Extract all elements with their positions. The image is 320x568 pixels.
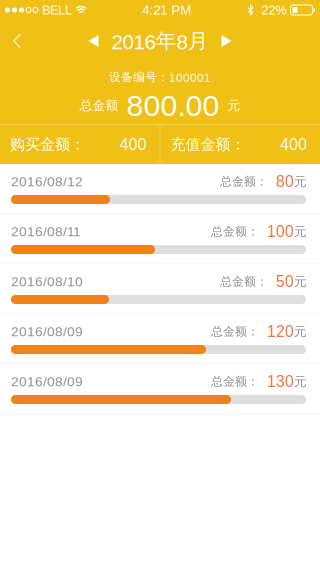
button[interactable]: 2016/08/09 bbox=[0, 314, 320, 364]
button[interactable]: 2016/08/09 bbox=[0, 364, 320, 414]
staticText: 2016/08/11 bbox=[11, 224, 81, 239]
button[interactable]: 2016/08/11 bbox=[0, 214, 320, 264]
staticText: 50 bbox=[276, 273, 294, 290]
staticText: 2016/08/09 bbox=[11, 374, 83, 389]
staticText: 总金额： bbox=[211, 374, 267, 389]
button[interactable]: Previous month bbox=[88, 20, 111, 62]
staticText: 元 bbox=[294, 174, 307, 189]
staticText: 元 bbox=[294, 224, 307, 239]
staticText: 总金额： bbox=[211, 224, 267, 239]
staticText: 130 bbox=[267, 373, 294, 390]
staticText: 购买金额： bbox=[10, 135, 85, 154]
staticText: 元 bbox=[294, 324, 307, 339]
staticText: 100 bbox=[267, 223, 294, 240]
staticText: 总金额 bbox=[79, 97, 118, 113]
staticText: 总金额： bbox=[220, 174, 276, 189]
staticText: 设备编号：100001 bbox=[109, 70, 211, 84]
staticText: 800.00 bbox=[118, 89, 227, 122]
button[interactable]: Back bbox=[0, 20, 44, 62]
button[interactable]: Next month bbox=[208, 20, 231, 62]
staticText: 总金额： bbox=[211, 324, 267, 339]
staticText: 22% bbox=[253, 3, 290, 17]
staticText: 元 bbox=[227, 97, 240, 113]
staticText: 充值金额： bbox=[170, 135, 245, 154]
button[interactable]: 2016/08/12 bbox=[0, 164, 320, 214]
staticText: 4:21 PM bbox=[142, 3, 191, 17]
staticText: BELL bbox=[38, 3, 76, 17]
button[interactable]: 2016/08/10 bbox=[0, 264, 320, 314]
staticText: 80 bbox=[276, 173, 294, 190]
staticText: 2016年8月 bbox=[111, 28, 208, 54]
staticText: 400 bbox=[280, 136, 307, 153]
staticText: 元 bbox=[294, 274, 307, 289]
staticText: 元 bbox=[294, 374, 307, 389]
staticText: 2016/08/09 bbox=[11, 324, 83, 339]
staticText: 120 bbox=[267, 323, 294, 340]
staticText: 2016/08/12 bbox=[11, 174, 83, 189]
staticText: 400 bbox=[119, 136, 146, 153]
staticText: 2016/08/10 bbox=[11, 274, 83, 289]
staticText: 总金额： bbox=[220, 274, 276, 289]
